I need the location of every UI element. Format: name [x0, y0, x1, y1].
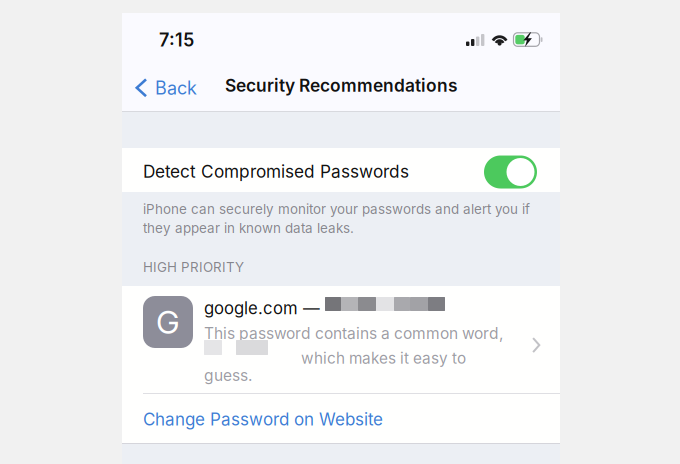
staticText: 7:15 — [159, 29, 194, 51]
button[interactable]: Back — [130, 57, 222, 99]
staticText: Back — [155, 77, 197, 99]
staticText: G — [156, 303, 180, 341]
staticText: iPhone can securely monitor your passwor… — [143, 201, 530, 217]
staticText: google.com — — [204, 298, 320, 318]
staticText: Change Password on Website — [143, 409, 383, 430]
staticText: This password contains a common word, — [204, 324, 503, 343]
staticText: they appear in known data leaks. — [143, 220, 354, 236]
button[interactable]: Detect Compromised Passwords — [484, 155, 537, 188]
staticText: guess. — [204, 366, 252, 385]
button[interactable]: Change Password on Website — [122, 394, 560, 443]
staticText: Security Recommendations — [225, 75, 458, 96]
button[interactable]: G — [122, 286, 560, 393]
staticText: HIGH PRIORITY — [143, 259, 244, 275]
staticText: which makes it easy to — [301, 349, 466, 368]
staticText: Detect Compromised Passwords — [143, 161, 409, 182]
